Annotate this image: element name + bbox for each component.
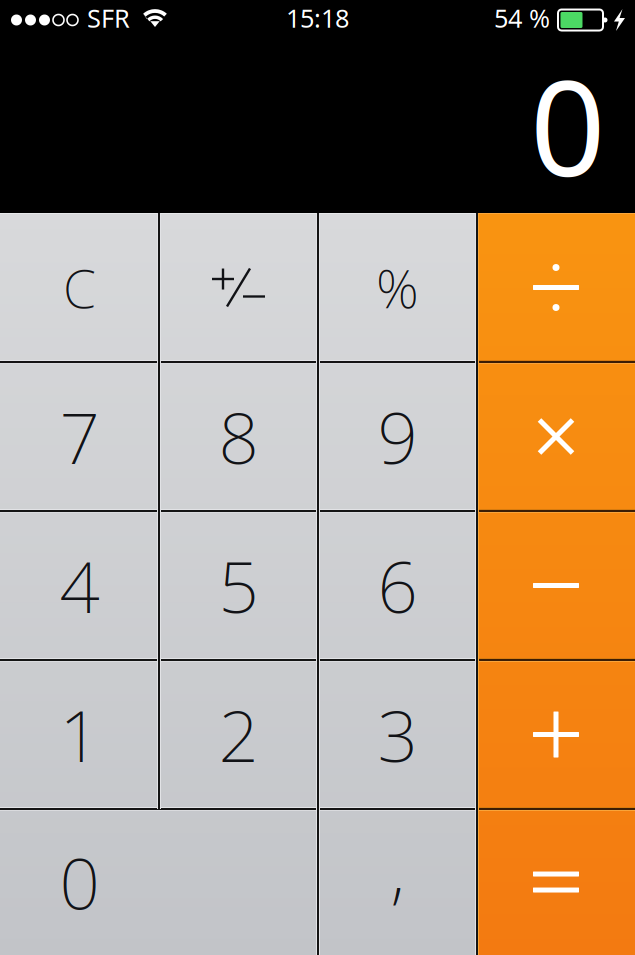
button[interactable]: 4 — [0, 511, 159, 660]
staticText: 4 — [59, 539, 99, 632]
button[interactable]: 7 — [0, 362, 159, 511]
button[interactable]: Decimal — [318, 809, 477, 955]
button[interactable]: Multiply — [477, 362, 635, 511]
button[interactable]: 9 — [318, 362, 477, 511]
staticText: , — [390, 822, 404, 916]
button[interactable]: Plus Minus — [159, 213, 318, 362]
button[interactable]: 8 — [159, 362, 318, 511]
staticText: 8 — [218, 390, 258, 483]
staticText: % — [376, 252, 419, 323]
staticText: 3 — [377, 688, 417, 781]
button[interactable]: Divide — [477, 213, 635, 362]
staticText: 7 — [59, 390, 99, 483]
button[interactable]: Percent — [318, 213, 477, 362]
button[interactable]: Equals — [477, 809, 635, 955]
button[interactable]: 1 — [0, 660, 159, 809]
button[interactable]: 2 — [159, 660, 318, 809]
button[interactable]: 3 — [318, 660, 477, 809]
staticText: C — [63, 252, 96, 323]
staticText: 5 — [218, 539, 258, 632]
staticText: SFR — [87, 1, 130, 35]
button[interactable]: 5 — [159, 511, 318, 660]
staticText: 6 — [377, 539, 417, 632]
staticText: 0 — [59, 835, 99, 929]
staticText: 0 — [530, 37, 606, 213]
button[interactable]: Add — [477, 660, 635, 809]
staticText: 15:18 — [286, 1, 349, 35]
button[interactable]: Subtract — [477, 511, 635, 660]
button[interactable]: 6 — [318, 511, 477, 660]
staticText: 54 % — [494, 1, 550, 35]
button[interactable]: Clear — [0, 213, 159, 362]
staticText: 2 — [218, 688, 258, 781]
staticText: 1 — [59, 688, 99, 781]
staticText: 9 — [377, 390, 417, 483]
button[interactable]: 0 — [0, 809, 318, 955]
